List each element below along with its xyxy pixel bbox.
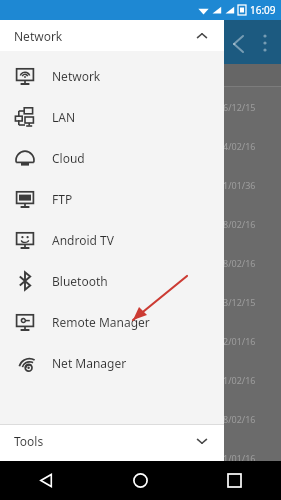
staticText: 3/12/15 — [223, 296, 256, 308]
button[interactable]: Net Manager — [0, 342, 224, 383]
staticText: Bluetooth — [52, 273, 108, 289]
staticText: Remote Manager — [52, 314, 150, 330]
button[interactable]: Tools — [0, 425, 224, 456]
staticText: FTP — [52, 191, 73, 207]
button[interactable]: Bluetooth — [0, 260, 224, 301]
staticText: Exit — [29, 482, 45, 494]
button[interactable]: Network — [0, 20, 224, 51]
staticText: Network — [14, 28, 63, 44]
button[interactable]: Settings — [149, 456, 224, 500]
button[interactable]: Back — [0, 461, 93, 500]
staticText: 4/02/16 — [223, 140, 256, 152]
staticText: 8/02/16 — [223, 257, 256, 269]
button[interactable]: Remote Manager — [0, 301, 224, 342]
button[interactable]: FTP — [0, 178, 224, 219]
button[interactable]: Exit — [0, 456, 74, 500]
staticText: Android TV — [52, 232, 114, 248]
button[interactable]: Theme — [74, 456, 149, 500]
button[interactable]: Home — [93, 461, 187, 500]
staticText: 1/01/36 — [223, 179, 256, 191]
staticText: 16:09 — [250, 3, 276, 17]
button[interactable]: Cloud — [0, 137, 224, 178]
staticText: Net Manager — [52, 355, 127, 371]
staticText: 1/02/16 — [223, 374, 256, 386]
staticText: Tools — [14, 433, 44, 449]
staticText: Network — [52, 68, 101, 84]
button[interactable]: LAN — [0, 96, 224, 137]
staticText: 8/02/16 — [223, 218, 256, 230]
staticText: 1/01/16 — [223, 452, 256, 464]
staticText: 6/12/15 — [223, 101, 256, 113]
staticText: 8/02/16 — [223, 413, 256, 425]
staticText: 2/01/16 — [223, 335, 256, 347]
staticText: Cloud — [52, 150, 85, 166]
button[interactable]: Network — [0, 55, 224, 96]
staticText: LAN — [52, 109, 76, 125]
button[interactable]: Recents — [187, 461, 281, 500]
button[interactable]: Android TV — [0, 219, 224, 260]
